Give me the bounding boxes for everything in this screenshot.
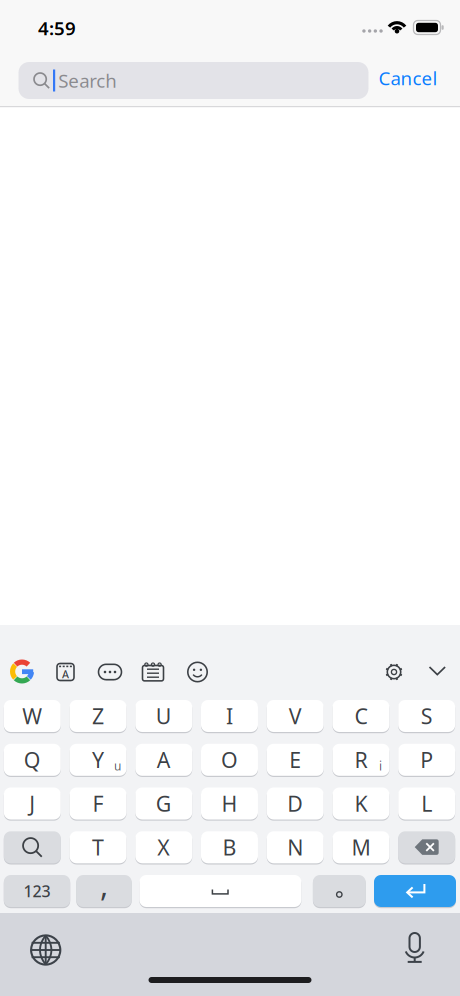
- button[interactable]: Clipboard: [141, 662, 165, 682]
- button[interactable]: L: [398, 786, 455, 820]
- button[interactable]: D: [267, 786, 324, 820]
- staticText: X: [157, 833, 170, 861]
- staticText: Search: [58, 68, 117, 93]
- button[interactable]: T: [69, 830, 126, 864]
- button[interactable]: P: [398, 743, 455, 777]
- staticText: H: [221, 789, 237, 818]
- staticText: F: [92, 789, 103, 818]
- button[interactable]: ,: [76, 874, 132, 908]
- button[interactable]: X: [135, 830, 192, 864]
- button[interactable]: C: [332, 699, 389, 733]
- staticText: E: [289, 746, 301, 774]
- staticText: W: [22, 702, 42, 730]
- button[interactable]: V: [267, 699, 324, 733]
- button[interactable]: Hide keyboard: [428, 666, 446, 676]
- button[interactable]: Google search: [10, 659, 34, 683]
- button[interactable]: O: [201, 743, 258, 777]
- staticText: ,: [100, 864, 108, 905]
- staticText: L: [421, 789, 432, 818]
- staticText: B: [222, 833, 236, 861]
- staticText: P: [420, 746, 433, 774]
- staticText: N: [287, 833, 303, 861]
- button[interactable]: Z: [69, 699, 126, 733]
- staticText: Z: [92, 702, 104, 730]
- staticText: S: [421, 702, 433, 730]
- button[interactable]: Search: [4, 830, 61, 864]
- staticText: U: [156, 702, 172, 730]
- staticText: A: [157, 746, 171, 774]
- button[interactable]: More options: [98, 663, 122, 681]
- button[interactable]: Emoji: [187, 662, 207, 682]
- button[interactable]: Next keyboard: [30, 934, 61, 965]
- staticText: I: [226, 702, 233, 730]
- button[interactable]: S: [398, 699, 455, 733]
- button[interactable]: B: [201, 830, 258, 864]
- button[interactable]: I: [201, 699, 258, 733]
- button[interactable]: Delete: [398, 830, 455, 864]
- staticText: 4:59: [38, 16, 76, 40]
- button[interactable]: E: [267, 743, 324, 777]
- staticText: G: [156, 789, 172, 818]
- button[interactable]: Space: [139, 874, 301, 908]
- staticText: R: [354, 746, 367, 774]
- button[interactable]: Y: [69, 743, 126, 777]
- staticText: V: [289, 702, 302, 730]
- button[interactable]: F: [69, 786, 126, 820]
- staticText: M: [351, 833, 370, 861]
- button[interactable]: H: [201, 786, 258, 820]
- staticText: u: [114, 758, 121, 774]
- button[interactable]: R: [332, 743, 389, 777]
- button[interactable]: W: [4, 699, 61, 733]
- staticText: Y: [92, 746, 104, 774]
- button[interactable]: Dictation: [402, 934, 428, 963]
- staticText: Cancel: [378, 66, 437, 90]
- button[interactable]: Return: [374, 874, 456, 908]
- button[interactable]: Q: [4, 743, 61, 777]
- button[interactable]: A: [135, 743, 192, 777]
- staticText: Q: [24, 746, 41, 774]
- button[interactable]: K: [332, 786, 389, 820]
- button[interactable]: G: [135, 786, 192, 820]
- button[interactable]: Search: [18, 62, 368, 99]
- button[interactable]: Keyboard settings: [385, 663, 403, 681]
- button[interactable]: J: [4, 786, 61, 820]
- button[interactable]: M: [332, 830, 389, 864]
- button[interactable]: Period: [313, 874, 366, 908]
- staticText: O: [221, 746, 238, 774]
- staticText: A: [62, 667, 69, 681]
- button[interactable]: Cancel: [378, 66, 437, 90]
- button[interactable]: N: [267, 830, 324, 864]
- staticText: 123: [23, 880, 50, 902]
- staticText: K: [354, 789, 367, 818]
- staticText: i: [379, 758, 382, 774]
- staticText: J: [29, 789, 35, 818]
- staticText: D: [287, 789, 303, 818]
- button[interactable]: Translate: [55, 662, 75, 682]
- staticText: T: [92, 833, 104, 861]
- button[interactable]: U: [135, 699, 192, 733]
- button[interactable]: Numbers: [4, 874, 70, 908]
- staticText: C: [354, 702, 367, 730]
